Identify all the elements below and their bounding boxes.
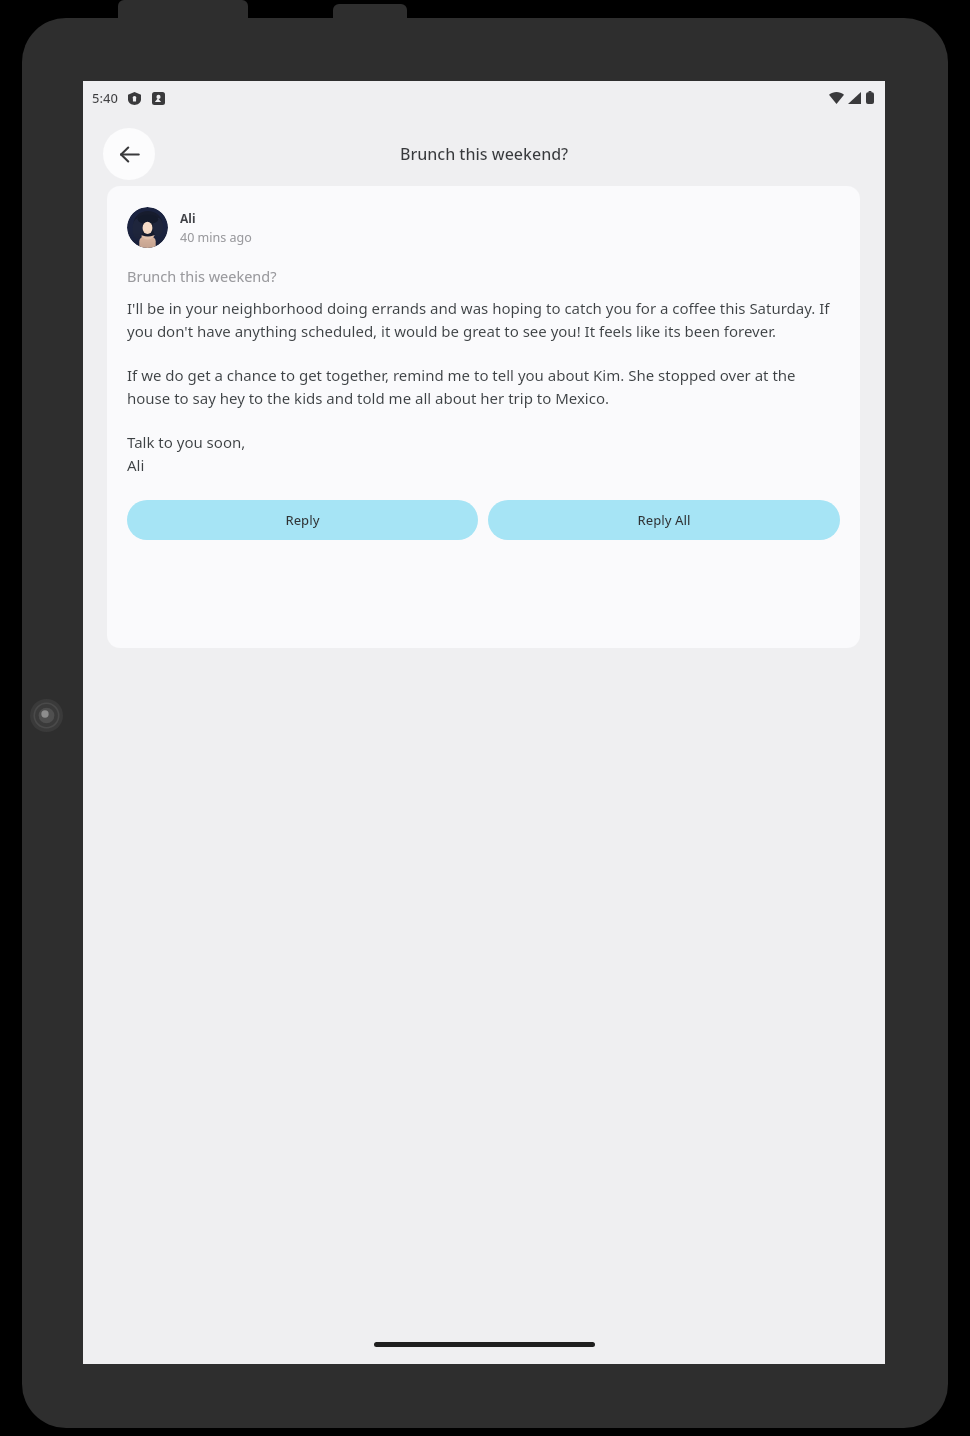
staticText: I'll be in your neighborhood doing erran…	[127, 298, 840, 342]
staticText: 40 mins ago	[180, 229, 252, 246]
button[interactable]: Reply All	[488, 500, 840, 540]
staticText: Ali	[180, 210, 196, 226]
staticText: Brunch this weekend?	[400, 143, 569, 165]
staticText: 5:40	[92, 89, 118, 107]
staticText: Talk to you soon, Ali	[127, 432, 246, 476]
staticText: Brunch this weekend?	[127, 266, 277, 286]
button[interactable]: Reply	[127, 500, 478, 540]
staticText: If we do get a chance to get together, r…	[127, 365, 840, 409]
staticText: Reply All	[637, 511, 691, 529]
staticText: Reply	[285, 511, 320, 529]
button[interactable]: Back	[103, 128, 155, 180]
